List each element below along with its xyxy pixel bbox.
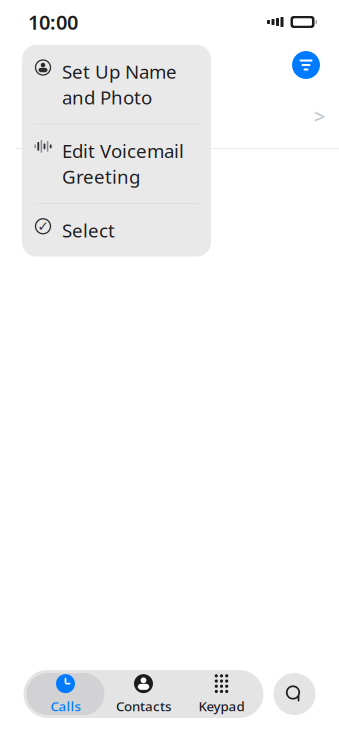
button[interactable]: Keypad (182, 673, 260, 715)
staticText: 10:00 (28, 9, 78, 35)
staticText: Greeting (62, 164, 140, 189)
button[interactable]: ✓ (22, 204, 211, 257)
button[interactable]: Search (273, 673, 315, 715)
button[interactable]: Contacts (104, 673, 182, 715)
staticText: Keypad (198, 697, 244, 715)
staticText: and Photo (62, 85, 152, 110)
button[interactable]: Set Up Name (22, 45, 211, 124)
button[interactable]: Calls (26, 673, 104, 715)
staticText: ✓ (37, 219, 48, 234)
button[interactable]: Filter calls (289, 48, 323, 82)
staticText: Edit Voicemail (62, 138, 184, 163)
staticText: > (314, 103, 325, 129)
staticText: Select (62, 218, 115, 243)
staticText: Contacts (116, 697, 171, 715)
button[interactable]: Edit Voicemail (22, 124, 211, 203)
staticText: Calls (50, 697, 80, 715)
staticText: Set Up Name (62, 59, 177, 84)
